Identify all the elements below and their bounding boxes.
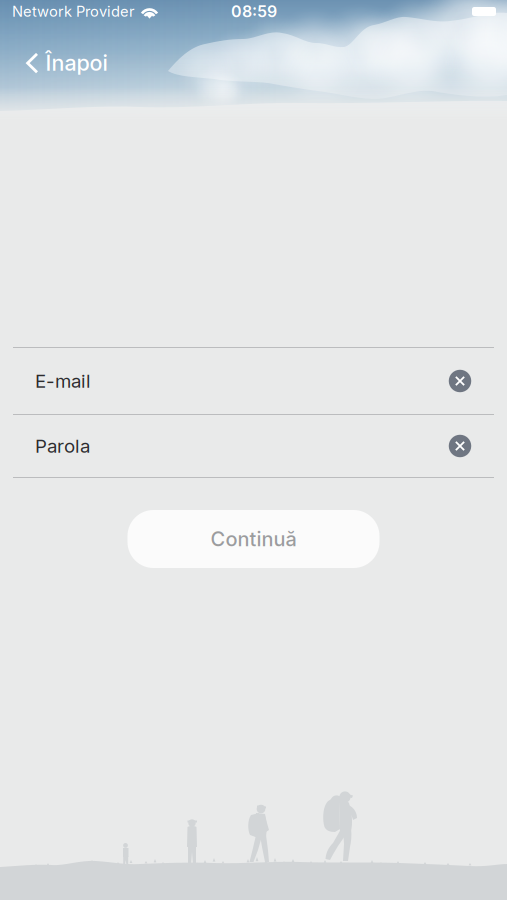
staticText: E-mail xyxy=(35,370,91,392)
button[interactable]: Continuă xyxy=(127,510,379,568)
staticText: 08:59 xyxy=(231,2,277,21)
button[interactable]: Clear text xyxy=(437,358,483,404)
staticText: Network Provider xyxy=(12,3,135,20)
button[interactable]: E-mail xyxy=(13,348,494,414)
button[interactable]: Înapoi xyxy=(0,47,123,79)
button[interactable]: Clear text xyxy=(437,423,483,469)
staticText: Înapoi xyxy=(45,50,107,76)
staticText: Continuă xyxy=(210,527,296,551)
button[interactable]: Parola xyxy=(13,415,494,477)
staticText: Parola xyxy=(35,435,90,457)
